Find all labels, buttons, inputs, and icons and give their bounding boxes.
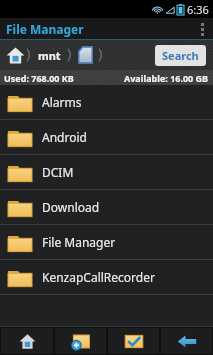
button[interactable]: More options <box>191 18 213 40</box>
button[interactable]: KenzapCallRecorder <box>0 260 213 294</box>
staticText: Alarms <box>42 94 82 110</box>
staticText: Used: 768.00 KB <box>4 72 74 84</box>
button[interactable]: New folder <box>55 328 106 354</box>
staticText: Available: 16.00 GB <box>124 72 209 84</box>
button[interactable]: Android <box>0 120 213 154</box>
staticText: Search <box>162 48 199 63</box>
staticText: File Manager <box>42 234 116 250</box>
button[interactable]: Alarms <box>0 85 213 119</box>
button[interactable]: DCIM <box>0 155 213 189</box>
staticText: KenzapCallRecorder <box>42 269 155 285</box>
button[interactable]: Search <box>155 45 206 66</box>
staticText: Download <box>42 199 100 215</box>
button[interactable]: Select <box>108 328 159 354</box>
button[interactable]: SD card <box>78 46 93 64</box>
staticText: DCIM <box>42 164 74 180</box>
button[interactable]: Home <box>1 328 53 354</box>
button[interactable]: Download <box>0 190 213 224</box>
staticText: File Manager <box>6 21 84 37</box>
button[interactable]: Back <box>161 328 212 354</box>
staticText: Android <box>42 129 87 145</box>
button[interactable]: Home <box>5 45 26 66</box>
button[interactable]: mnt <box>38 48 61 63</box>
staticText: 6:36 <box>187 2 209 17</box>
button[interactable]: File Manager <box>0 225 213 259</box>
